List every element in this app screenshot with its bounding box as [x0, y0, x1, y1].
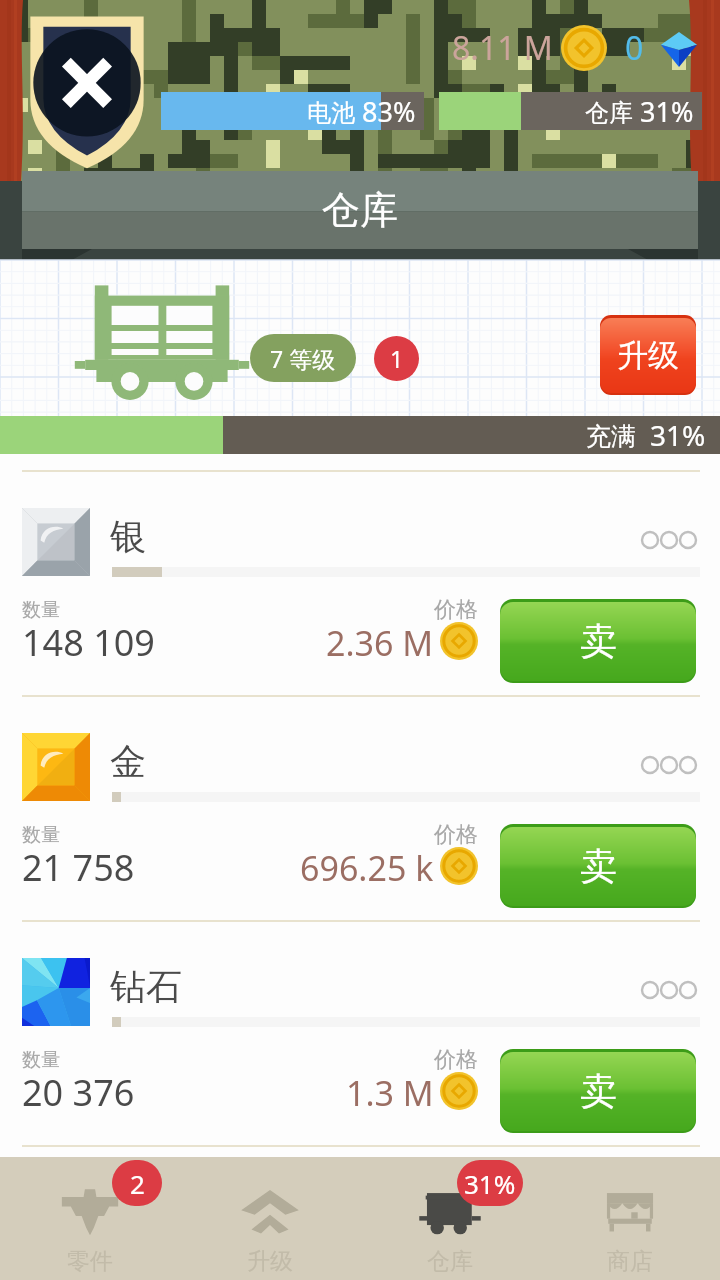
button[interactable]: 仓库 — [360, 1157, 540, 1280]
staticText: 卖 — [580, 618, 617, 665]
staticText: 电池 — [307, 95, 362, 128]
staticText: 2.36 M — [326, 620, 434, 664]
staticText: 31% — [464, 1166, 516, 1201]
staticText: 仓库 — [585, 95, 640, 128]
button[interactable]: 卖 — [500, 1049, 696, 1133]
staticText: 2 — [130, 1166, 145, 1201]
staticText: 卖 — [580, 1068, 617, 1115]
staticText: 31% — [640, 93, 694, 130]
staticText: 充满 — [586, 418, 650, 452]
button[interactable]: 零件 — [0, 1157, 180, 1280]
staticText: 21 758 — [22, 843, 135, 892]
button[interactable]: Close — [28, 11, 146, 169]
staticText: 1 — [390, 343, 404, 374]
staticText: 价格 — [434, 596, 478, 624]
staticText: 83% — [362, 93, 416, 130]
button[interactable]: 商店 — [540, 1157, 720, 1280]
staticText: 数量 — [22, 598, 60, 622]
staticText: 价格 — [434, 1046, 478, 1074]
staticText: 148 109 — [22, 618, 155, 667]
staticText: 金 — [110, 739, 146, 784]
button[interactable]: 卖 — [500, 824, 696, 908]
staticText: 卖 — [580, 843, 617, 890]
staticText: 银 — [110, 514, 146, 559]
staticText: 仓库 — [427, 1247, 473, 1276]
button[interactable]: More options — [636, 970, 702, 1010]
staticText: 仓库 — [322, 186, 398, 234]
staticText: 31% — [650, 416, 706, 454]
staticText: 20 376 — [22, 1068, 135, 1117]
button[interactable]: 升级 — [600, 315, 696, 395]
staticText: 升级 — [247, 1247, 293, 1276]
staticText: 商店 — [607, 1247, 653, 1276]
staticText: 0 — [625, 26, 644, 70]
button[interactable]: 7 等级 — [250, 334, 356, 382]
staticText: 数量 — [22, 1048, 60, 1072]
staticText: 696.25 k — [300, 845, 434, 889]
staticText: 7 等级 — [270, 343, 336, 374]
staticText: 钻石 — [110, 964, 182, 1009]
staticText: 数量 — [22, 823, 60, 847]
button[interactable]: 卖 — [500, 599, 696, 683]
staticText: 价格 — [434, 821, 478, 849]
staticText: 1.3 M — [346, 1070, 434, 1114]
staticText: 8.11 M — [452, 26, 553, 70]
staticText: 升级 — [617, 336, 679, 375]
staticText: 零件 — [67, 1247, 113, 1276]
button[interactable]: More options — [636, 520, 702, 560]
button[interactable]: More options — [636, 745, 702, 785]
button[interactable]: 升级 — [180, 1157, 360, 1280]
